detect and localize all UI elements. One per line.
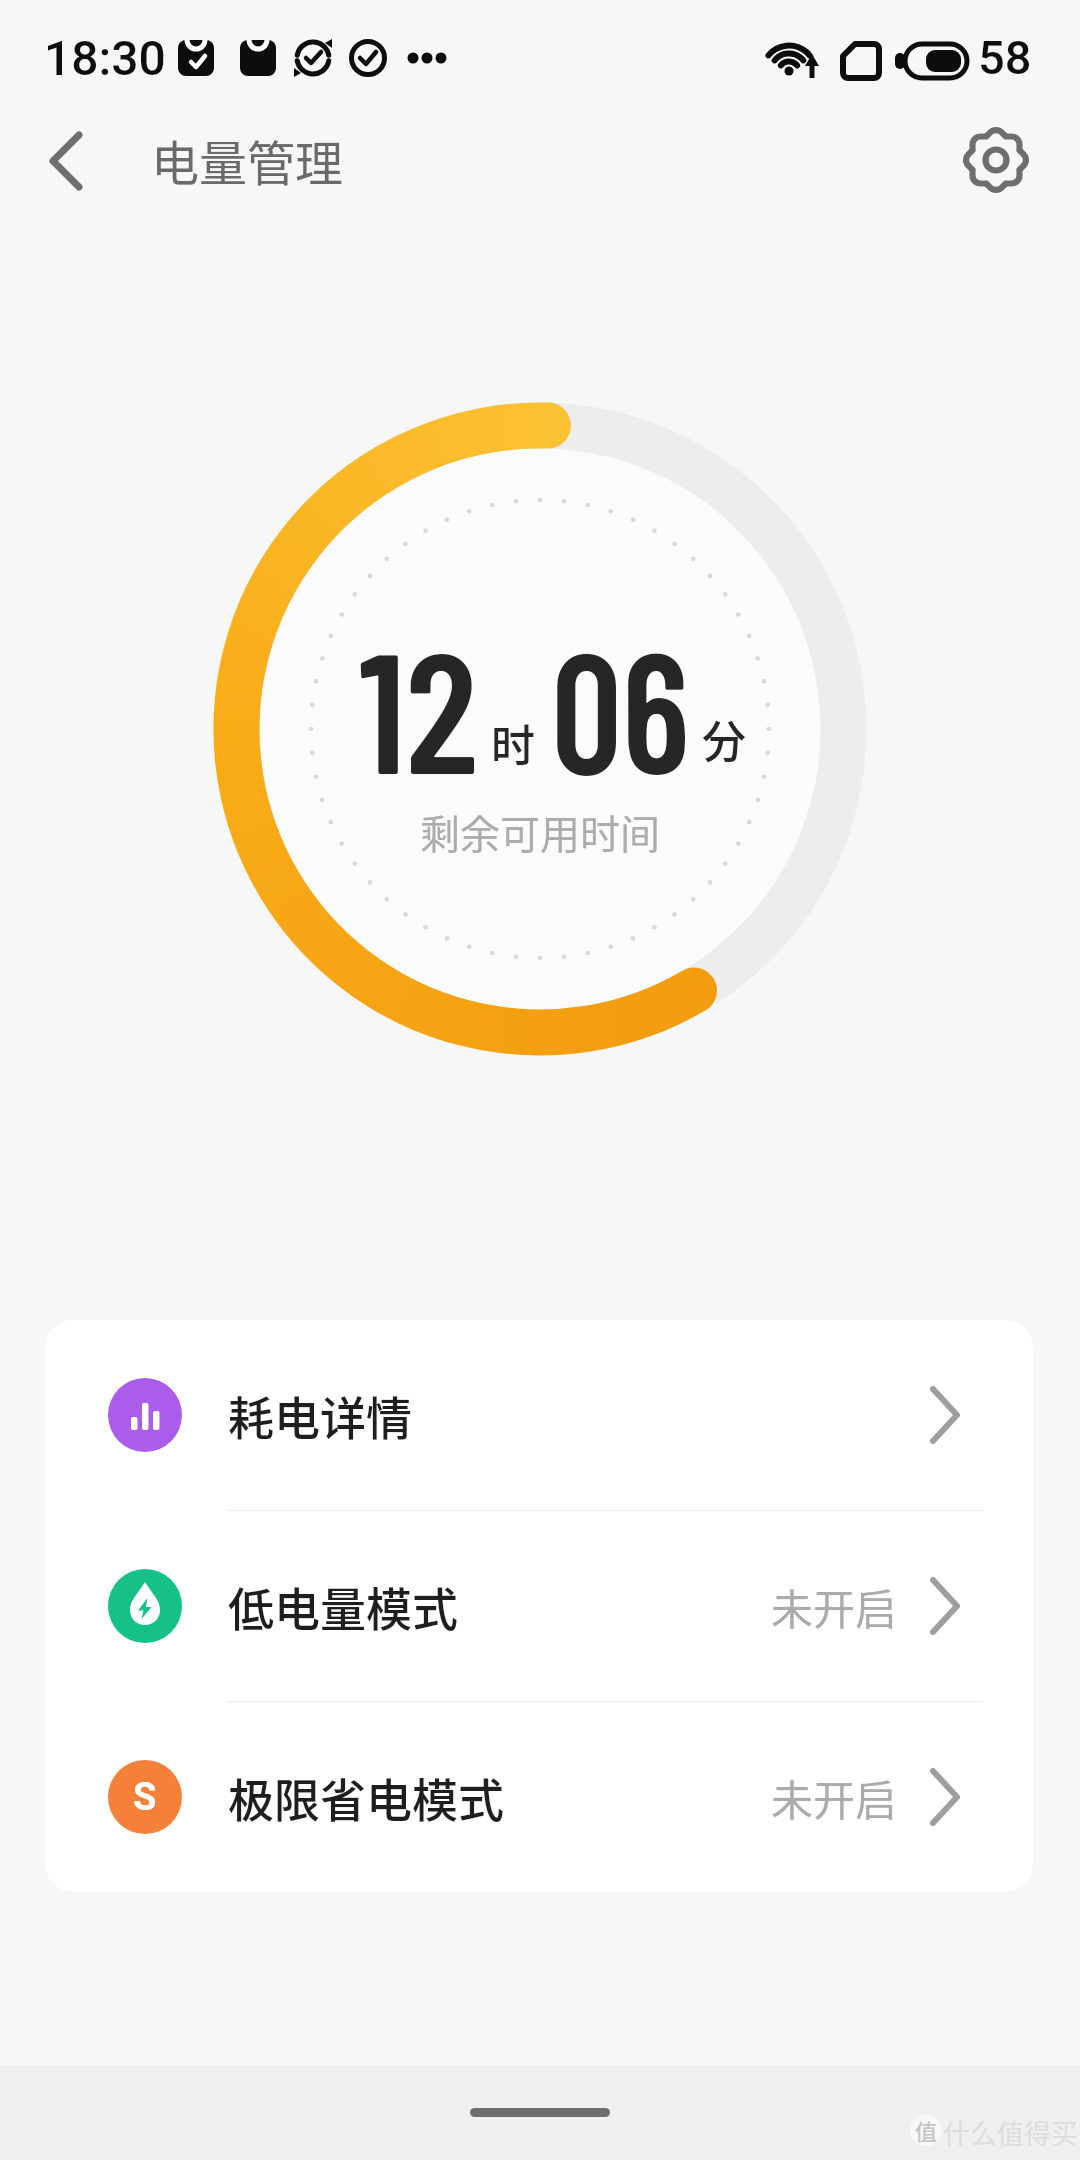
staticText: 值	[915, 2114, 938, 2146]
staticText: 极限省电模式	[228, 1764, 504, 1831]
staticText: 耗电详情	[228, 1382, 412, 1449]
button[interactable]: 耗电详情	[45, 1320, 1033, 1510]
staticText: 06	[551, 605, 690, 805]
staticText: 12	[359, 605, 478, 805]
staticText: 58	[978, 30, 1032, 85]
staticText: 分	[702, 707, 746, 767]
staticText: 时	[491, 711, 535, 771]
button[interactable]	[960, 124, 1032, 196]
staticText: 未开启	[771, 1767, 898, 1828]
button[interactable]: 低电量模式	[45, 1511, 1033, 1701]
staticText: 未开启	[771, 1576, 898, 1637]
staticText: S	[133, 1775, 157, 1820]
staticText: 什么值得买	[943, 2113, 1078, 2152]
button[interactable]	[30, 130, 100, 194]
staticText: 电量管理	[151, 125, 344, 195]
button[interactable]: 极限省电模式	[45, 1702, 1033, 1892]
staticText: 低电量模式	[228, 1573, 458, 1640]
staticText: 剩余可用时间	[420, 803, 660, 861]
staticText: 18:30	[44, 30, 166, 86]
